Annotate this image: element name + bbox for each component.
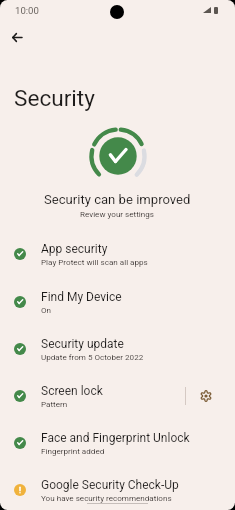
button[interactable]: Security update	[0, 325, 235, 372]
staticText: Security	[14, 85, 95, 111]
button[interactable]: App security	[0, 230, 235, 277]
button[interactable]: Back	[1, 21, 33, 53]
staticText: Google Security Check-Up	[41, 478, 179, 492]
staticText: Security update	[41, 337, 124, 351]
staticText: Fingerprint added	[41, 446, 105, 455]
staticText: Face and Fingerprint Unlock	[41, 431, 190, 445]
staticText: Find My Device	[41, 290, 122, 304]
button[interactable]: Find My Device	[0, 278, 235, 325]
staticText: App security	[41, 242, 108, 256]
button[interactable]: Google Security Check-Up	[0, 466, 235, 510]
staticText: Security can be improved	[44, 192, 191, 207]
staticText: Play Protect will scan all apps	[41, 257, 148, 266]
staticText: Review your settings	[80, 209, 155, 218]
button[interactable]: Screen lock	[0, 372, 235, 419]
button[interactable]: Face and Fingerprint Unlock	[0, 419, 235, 466]
staticText: Screen lock	[41, 384, 103, 398]
staticText: On	[41, 305, 52, 314]
staticText: Pattern	[41, 399, 68, 408]
staticText: 10:00	[15, 5, 39, 16]
staticText: You have security recommendations	[41, 493, 172, 502]
staticText: Update from 5 October 2022	[41, 352, 144, 361]
button[interactable]: Screen lock settings	[191, 372, 220, 419]
